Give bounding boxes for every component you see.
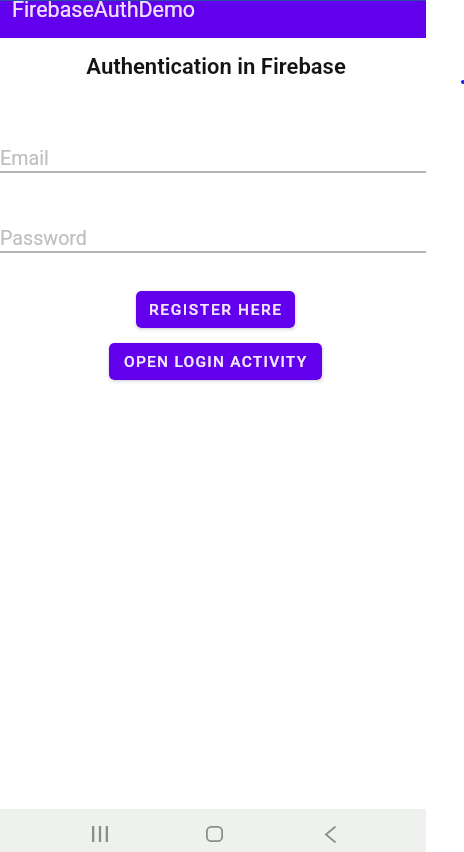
staticText: FirebaseAuthDemo (12, 0, 196, 22)
staticText: Password (0, 227, 87, 250)
button[interactable]: OPEN LOGIN ACTIVITY (109, 343, 322, 380)
button[interactable]: Password (0, 221, 426, 253)
button[interactable]: Email (0, 141, 426, 173)
staticText: Email (0, 147, 49, 170)
button[interactable]: Recent apps (73, 816, 127, 852)
staticText: Authentication in Firebase (3, 54, 429, 80)
button[interactable]: Back (303, 816, 357, 852)
button[interactable]: Home (187, 816, 241, 852)
staticText: OPEN LOGIN ACTIVITY (124, 353, 308, 371)
button[interactable]: FirebaseAuthDemo (0, 0, 426, 38)
button[interactable]: REGISTER HERE (136, 291, 295, 328)
staticText: REGISTER HERE (149, 301, 283, 319)
